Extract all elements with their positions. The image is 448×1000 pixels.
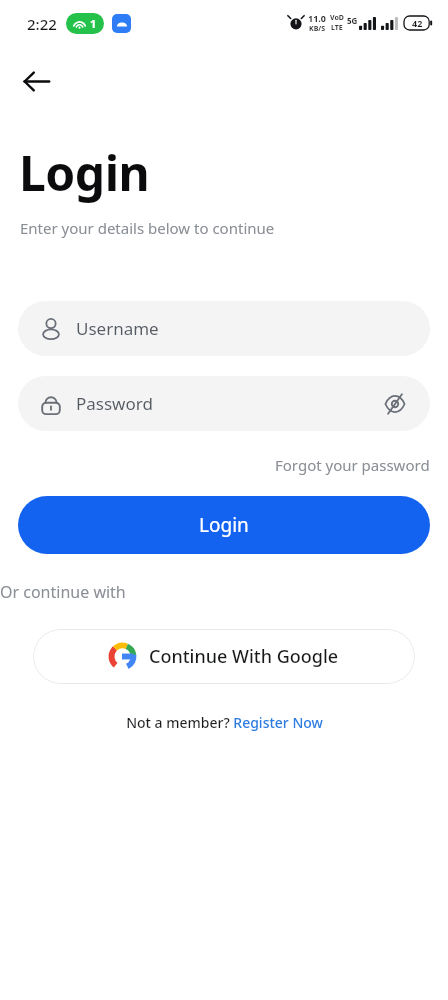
staticText: Login bbox=[19, 140, 150, 205]
staticText: Enter your details below to continue bbox=[20, 218, 275, 238]
staticText: Password bbox=[76, 392, 153, 415]
staticText: VoD bbox=[330, 13, 344, 23]
staticText: Or continue with bbox=[0, 581, 448, 603]
button[interactable]: Username bbox=[18, 301, 430, 356]
button[interactable]: Password bbox=[18, 376, 430, 431]
button[interactable]: Forgot your password bbox=[271, 452, 434, 478]
staticText: Login bbox=[199, 512, 249, 538]
staticText: 11.0 bbox=[308, 12, 326, 24]
staticText: Username bbox=[76, 317, 159, 340]
button[interactable]: Not a member? Register Now bbox=[120, 710, 329, 735]
button[interactable]: Show password bbox=[380, 389, 410, 419]
staticText: 2:22 bbox=[27, 14, 57, 34]
staticText: 42 bbox=[412, 17, 423, 29]
button[interactable]: Login bbox=[18, 496, 430, 554]
staticText: Not a member? Register Now bbox=[126, 713, 323, 732]
staticText: Continue With Google bbox=[149, 644, 339, 669]
staticText: Forgot your password bbox=[275, 455, 430, 475]
staticText: 1 bbox=[90, 16, 97, 31]
staticText: KB/S bbox=[309, 24, 326, 34]
button[interactable]: Continue With Google bbox=[33, 629, 415, 684]
button[interactable]: Back bbox=[14, 59, 58, 103]
staticText: 5G bbox=[347, 15, 358, 26]
staticText: LTE bbox=[331, 23, 343, 33]
